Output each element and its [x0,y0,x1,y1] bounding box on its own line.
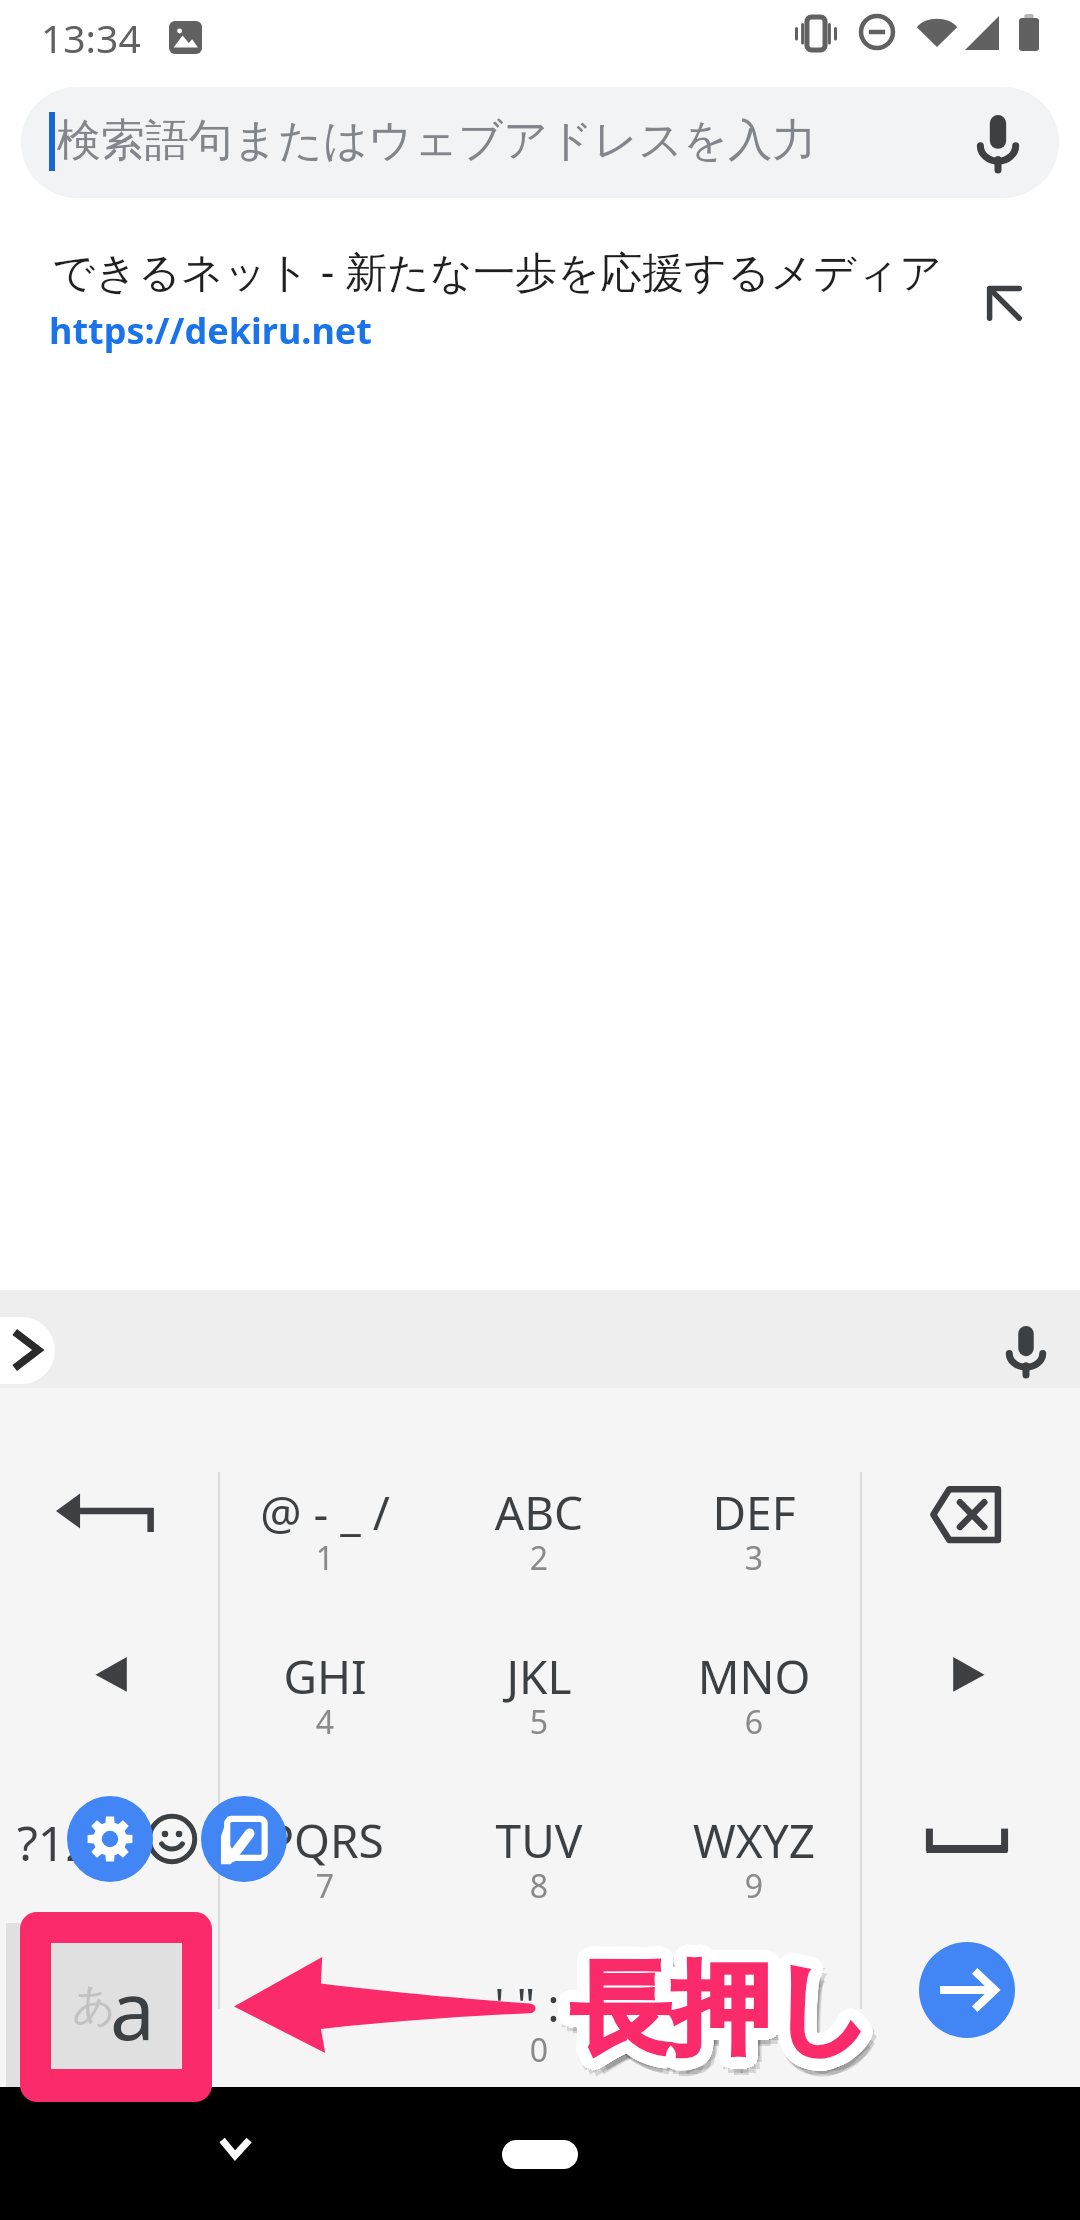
button[interactable]: Home [502,2140,578,2169]
button[interactable]: Switch kana / alphabet [51,1943,182,2069]
staticText: 長押し [584,1946,887,2072]
staticText: ?12 [17,1810,93,1875]
staticText: 3 [647,1536,861,1580]
staticText: 長押し [578,1938,881,2064]
staticText: 長押し [562,1956,865,2082]
staticText: 6 [647,1700,861,1744]
button[interactable]: Switch input method [201,1796,287,1882]
button[interactable]: TUV [432,1808,646,1966]
button[interactable]: Hide keyboard [205,2117,265,2177]
staticText: a [110,1954,155,2063]
staticText: 長押し [559,1942,862,2068]
button[interactable]: @ - _ / [218,1480,432,1638]
staticText: 長押し [566,1958,869,2084]
staticText: 長押し [569,1941,872,2067]
staticText: 長押し [560,1940,863,2066]
staticText: できるネット - 新たな一歩を応援するメディア [52,242,943,299]
button[interactable]: Fill suggestion [984,283,1024,323]
staticText: 長押し [573,1952,876,2078]
button[interactable]: できるネット - 新たな一歩を応援するメディア [0,228,1080,378]
staticText: 5 [432,1700,646,1744]
staticText: 長押し [564,1945,867,2071]
staticText: 長押し [567,1941,870,2067]
staticText: 長押し [580,1954,883,2080]
button[interactable]: DEF [647,1480,861,1638]
staticText: 長押し [569,1953,872,2079]
button[interactable]: MNO [647,1644,861,1802]
button[interactable]: Settings [67,1796,153,1882]
staticText: WXYZ [647,1809,861,1872]
staticText: 長押し [581,1942,884,2068]
staticText: 長押し [576,1945,879,2071]
staticText: 長押し [565,1951,868,2077]
staticText: 長押し [559,1952,862,2078]
button[interactable]: Backspace [928,1483,1004,1545]
staticText: 長押し [576,1957,879,2083]
staticText: 長押し [576,1937,879,2063]
button[interactable]: ?12 [8,1806,208,1872]
staticText: 長押し [576,1947,879,2073]
staticText: 長押し [581,1952,884,2078]
staticText: 2 [432,1536,646,1580]
staticText: 長押し [560,1954,863,2080]
staticText: 長押し [560,1952,863,2078]
staticText: 長押し [564,1947,867,2073]
staticText: 長押し [580,1941,883,2067]
staticText: 長押し [576,1949,879,2075]
staticText: 長押し [573,1939,876,2065]
staticText: 長押し [571,1959,874,2085]
staticText: ' " : ; [432,1973,646,2036]
staticText: MNO [647,1645,861,1708]
staticText: 長押し [573,1965,876,2091]
staticText: 長押し [564,1949,867,2075]
staticText: 長押し [582,1945,885,2071]
staticText: @ - _ / [218,1481,432,1544]
staticText: 長押し [567,1952,870,2078]
staticText: 長押し [573,1942,876,2068]
staticText: 長押し [562,1938,865,2064]
staticText: 長押し [565,1943,868,2069]
staticText: 長押し [562,1959,865,2085]
staticText: 長押し [570,1947,873,2073]
button[interactable] [6,1923,182,2103]
staticText: 7 [218,1864,432,1908]
staticText: JKL [432,1645,646,1708]
staticText: 長押し [582,1947,885,2073]
button[interactable]: GHI [218,1644,432,1802]
staticText: ABC [432,1481,646,1544]
staticText: 長押し [578,1956,881,2082]
staticText: 長押し [566,1936,869,2062]
button[interactable]: Undo [56,1478,168,1544]
staticText: あ [72,1978,117,2032]
staticText: PQRS [218,1809,432,1872]
button[interactable]: Move cursor left [90,1655,136,1693]
button[interactable]: Voice search [979,115,1017,170]
button[interactable]: ' " : ; [432,1972,646,2130]
staticText: 検索語句またはウェブアドレスを入力 [57,113,817,168]
staticText: DEF [647,1481,861,1544]
staticText: GHI [218,1645,432,1708]
button[interactable]: Voice input [1008,1326,1044,1375]
button[interactable]: 検索語句またはウェブアドレスを入力 [21,87,1059,198]
staticText: 長押し [558,1947,861,2073]
button[interactable]: Expand candidates [0,1317,55,1384]
staticText: 長押し [586,1952,889,2078]
button[interactable]: Space [920,1810,1014,1872]
staticText: 9 [647,1864,861,1908]
staticText: 長押し [569,1935,872,2061]
button[interactable]: Move cursor right [944,1655,990,1693]
button[interactable]: ABC [432,1480,646,1638]
staticText: 8 [432,1864,646,1908]
staticText: 長押し [564,1957,867,2083]
staticText: 長押し [569,1959,872,2085]
button[interactable]: JKL [432,1644,646,1802]
staticText: 長押し [574,1958,877,2084]
staticText: 長押し [567,1942,870,2068]
staticText: 長押し [558,1949,861,2075]
button[interactable]: WXYZ [647,1808,861,1966]
staticText: TUV [432,1809,646,1872]
button[interactable]: Enter [919,1942,1015,2038]
staticText: 長押し [574,1936,877,2062]
button[interactable]: PQRS [218,1808,432,1966]
staticText: 長押し [580,1940,883,2066]
